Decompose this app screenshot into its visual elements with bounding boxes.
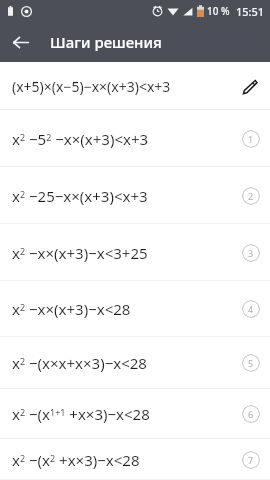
staticText: (x+5)×(x−5)−x×(x+3)<x+3 (12, 77, 171, 96)
staticText: 2 (248, 190, 254, 202)
staticText: x2 −x×(x+3)−x<28 (12, 299, 131, 319)
staticText: x2 −(x2 +x×3)−x<28 (12, 450, 140, 470)
staticText: 10 % (207, 4, 230, 18)
staticText: 7 (248, 454, 254, 466)
button[interactable]: x2 −52 −x×(x+3)<x+3 (0, 110, 270, 167)
staticText: 3 (248, 247, 254, 259)
staticText: Шаги решения (50, 32, 162, 52)
button[interactable]: x2 −x×(x+3)−x<28 (0, 281, 270, 337)
staticText: 6 (248, 408, 254, 420)
staticText: x2 −(x1+1 +x×3)−x<28 (12, 404, 150, 424)
staticText: x2 −52 −x×(x+3)<x+3 (12, 129, 149, 149)
button[interactable]: 5 (242, 354, 260, 372)
staticText: 1 (248, 133, 254, 145)
button[interactable]: 3 (242, 244, 260, 262)
staticText: x2 −(x×x+x×3)−x<28 (12, 353, 147, 373)
button[interactable]: x2 −x×(x+3)−x<3+25 (0, 224, 270, 281)
button[interactable]: Edit (238, 75, 260, 97)
button[interactable]: x2 −(x1+1 +x×3)−x<28 (0, 389, 270, 439)
button[interactable]: x2 −(x×x+x×3)−x<28 (0, 337, 270, 389)
button[interactable]: 4 (242, 300, 260, 318)
staticText: 15:51 (236, 4, 265, 19)
button[interactable]: 6 (242, 405, 260, 423)
button[interactable]: 2 (242, 187, 260, 205)
button[interactable]: Back (0, 22, 40, 62)
staticText: 4 (248, 303, 254, 315)
button[interactable]: x2 −25−x×(x+3)<x+3 (0, 167, 270, 224)
button[interactable]: 7 (242, 451, 260, 469)
staticText: 5 (248, 357, 254, 369)
button[interactable]: 1 (242, 130, 260, 148)
staticText: x2 −x×(x+3)−x<3+25 (12, 243, 148, 263)
staticText: x2 −25−x×(x+3)<x+3 (12, 186, 148, 206)
button[interactable]: x2 −(x2 +x×3)−x<28 (0, 439, 270, 480)
button[interactable]: (x+5)×(x−5)−x×(x+3)<x+3 (0, 62, 270, 110)
